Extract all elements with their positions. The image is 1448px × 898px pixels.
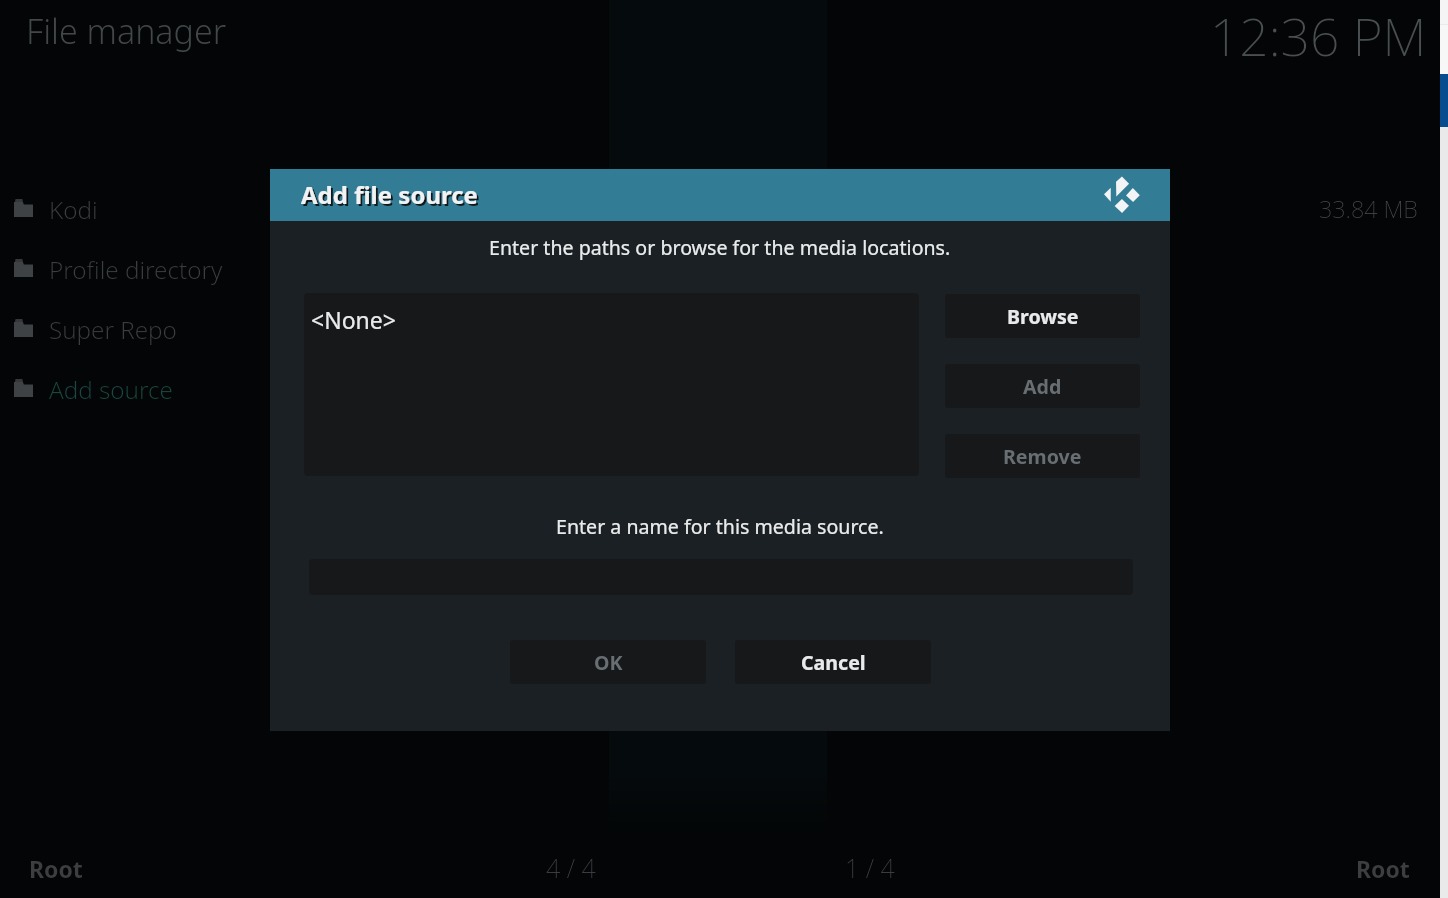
staticText: Remove xyxy=(1003,443,1082,470)
staticText: Add source xyxy=(49,373,173,406)
staticText: File manager xyxy=(26,8,227,54)
staticText: Add file source xyxy=(301,178,478,211)
staticText: 1 / 4 xyxy=(845,851,895,885)
other: Kodi xyxy=(1100,173,1145,218)
staticText: Root xyxy=(29,853,83,884)
staticText: Enter the paths or browse for the media … xyxy=(489,234,951,261)
staticText: Enter a name for this media source. xyxy=(556,513,884,540)
button[interactable]: Profile directory xyxy=(0,240,520,300)
button[interactable]: Cancel xyxy=(735,640,931,684)
staticText: <None> xyxy=(311,304,396,335)
button[interactable]: Add source xyxy=(0,360,520,420)
staticText: Root xyxy=(1356,853,1410,884)
staticText: 4 / 4 xyxy=(546,851,596,885)
staticText: 33.84 MB xyxy=(1319,193,1418,225)
staticText: Add file source xyxy=(303,180,480,213)
staticText: Kodi xyxy=(49,193,98,226)
staticText: Add xyxy=(1023,373,1062,400)
staticText: OK xyxy=(594,649,623,676)
staticText: Cancel xyxy=(801,649,866,676)
button[interactable]: Remove xyxy=(945,434,1140,478)
button[interactable]: Super Repo xyxy=(0,300,520,360)
staticText: Super Repo xyxy=(49,313,177,346)
button[interactable]: Kodi xyxy=(0,180,520,240)
staticText: Profile directory xyxy=(49,253,223,286)
button[interactable]: Add xyxy=(945,364,1140,408)
staticText: 12:36 PM xyxy=(1210,1,1427,71)
staticText: Browse xyxy=(1007,303,1079,330)
button[interactable]: OK xyxy=(510,640,706,684)
button[interactable]: Browse xyxy=(945,294,1140,338)
